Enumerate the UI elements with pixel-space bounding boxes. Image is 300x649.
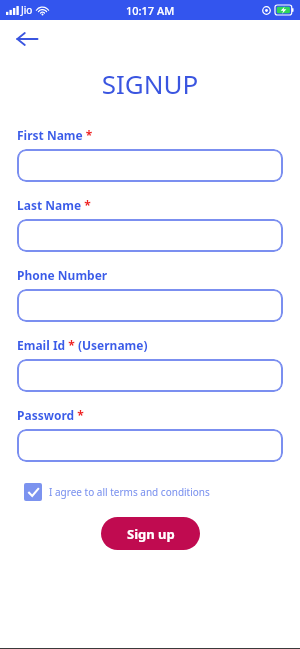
staticText: Password * [17,407,84,423]
staticText: I agree to all terms and conditions [49,485,210,499]
staticText: 10:17 AM [126,3,175,18]
button[interactable] [17,289,283,322]
button[interactable] [17,429,283,462]
button[interactable]: Back [10,22,44,56]
staticText: Sign up [127,525,175,543]
staticText: First Name * [17,127,93,143]
staticText: SIGNUP [0,66,300,101]
staticText: Jio [21,3,33,17]
button[interactable]: I agree to all terms and conditions [24,483,210,501]
staticText: Email Id * (Username) [17,337,148,353]
staticText: Last Name * [17,197,91,213]
staticText: Phone Number [17,267,108,283]
button[interactable]: Sign up [101,517,200,550]
button[interactable] [17,219,283,252]
button[interactable] [17,359,283,392]
button[interactable] [17,149,283,182]
